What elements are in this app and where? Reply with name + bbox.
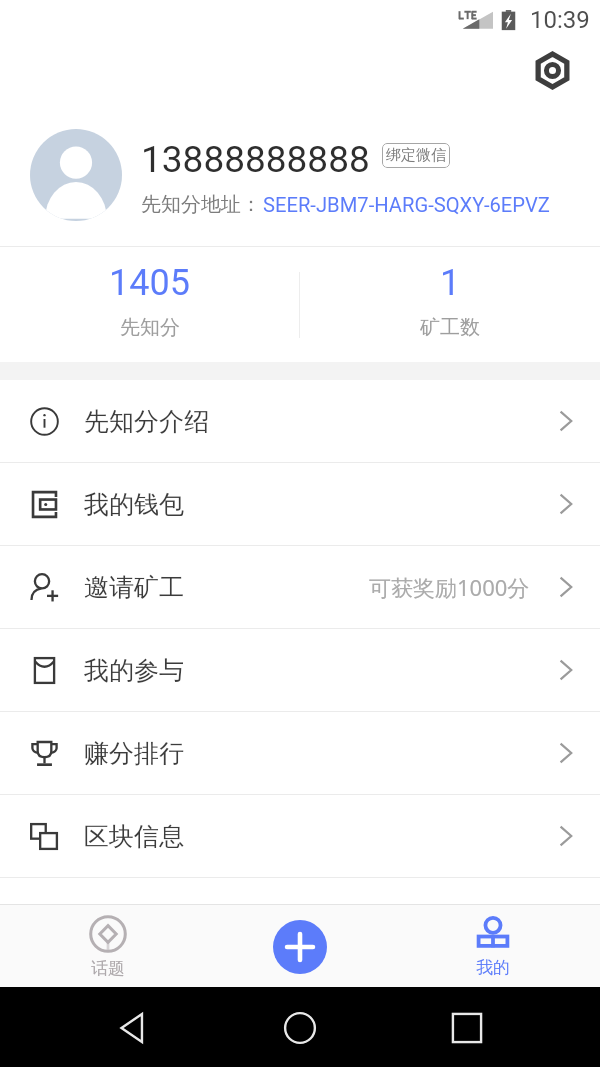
button[interactable]: Add bbox=[273, 920, 327, 974]
button[interactable]: Back bbox=[105, 1000, 161, 1056]
staticText: 区块信息 bbox=[84, 821, 184, 852]
staticText: 1405 bbox=[109, 262, 190, 304]
staticText: 邀请矿工 bbox=[84, 572, 184, 603]
staticText: 我的参与 bbox=[84, 655, 184, 686]
button[interactable]: 邀请矿工 bbox=[0, 546, 600, 628]
staticText: 绑定微信 bbox=[386, 146, 446, 165]
staticText: 先知分地址： bbox=[141, 192, 261, 217]
button[interactable]: 我的钱包 bbox=[0, 463, 600, 545]
button[interactable]: 区块信息 bbox=[0, 795, 600, 877]
button[interactable]: 我的 bbox=[393, 904, 593, 987]
staticText: 矿工数 bbox=[420, 315, 480, 340]
staticText: 我的 bbox=[476, 957, 510, 978]
button[interactable]: 绑定微信 bbox=[382, 143, 450, 168]
button[interactable]: SEER-JBM7-HARG-SQXY-6EPVZ bbox=[263, 193, 550, 217]
staticText: 可获奖励1000分 bbox=[369, 572, 530, 602]
staticText: 我的钱包 bbox=[84, 489, 184, 520]
staticText: 话题 bbox=[91, 958, 125, 979]
staticText: 13888888888 bbox=[141, 138, 370, 181]
staticText: 1 bbox=[440, 262, 461, 304]
button[interactable]: 我的参与 bbox=[0, 629, 600, 711]
button[interactable]: 先知分介绍 bbox=[0, 380, 600, 462]
button[interactable]: 1 bbox=[300, 247, 600, 362]
staticText: 先知分 bbox=[120, 315, 180, 340]
staticText: 10:39 bbox=[530, 6, 590, 34]
button[interactable]: 1405 bbox=[0, 247, 299, 362]
button[interactable]: Settings bbox=[528, 46, 576, 94]
button[interactable]: 赚分排行 bbox=[0, 712, 600, 794]
button[interactable]: 话题 bbox=[8, 904, 208, 987]
button[interactable]: Home bbox=[272, 1000, 328, 1056]
staticText: 赚分排行 bbox=[84, 738, 184, 769]
staticText: 先知分介绍 bbox=[84, 406, 209, 437]
button[interactable]: Recent apps bbox=[439, 1000, 495, 1056]
